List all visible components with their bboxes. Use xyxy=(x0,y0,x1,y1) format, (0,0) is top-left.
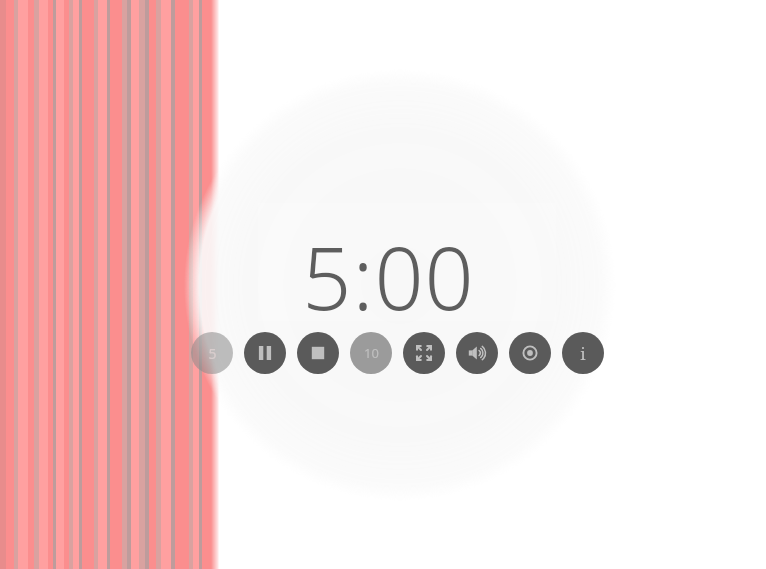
button[interactable]: Pause xyxy=(244,332,286,374)
button[interactable]: Information xyxy=(562,332,604,374)
button[interactable]: Forward 10 seconds xyxy=(350,332,392,374)
button[interactable]: Volume xyxy=(456,332,498,374)
button[interactable]: Record xyxy=(509,332,551,374)
staticText: 5 xyxy=(208,344,217,363)
button[interactable]: Stop xyxy=(297,332,339,374)
staticText: i xyxy=(580,342,586,365)
staticText: 5:00 xyxy=(302,218,475,326)
staticText: 10 xyxy=(364,344,379,362)
button[interactable]: Rewind 5 seconds xyxy=(191,332,233,374)
button[interactable]: Fullscreen xyxy=(403,332,445,374)
